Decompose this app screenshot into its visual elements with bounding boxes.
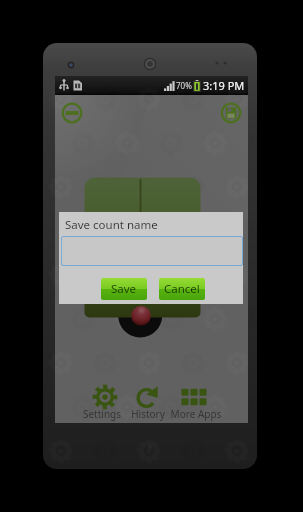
staticText: Save [111,281,137,297]
staticText: Settings [75,407,129,421]
button[interactable]: Save [101,278,147,300]
staticText: More Apps [169,407,223,421]
staticText: Cancel [164,281,200,297]
button[interactable]: Cancel [159,278,205,300]
staticText: Save count name [65,217,158,233]
button[interactable]: More Apps [169,381,223,423]
button[interactable]: History [121,381,175,423]
button[interactable]: Settings [75,381,129,423]
staticText: 3:19 PM [203,78,245,93]
staticText: 70% [176,80,192,91]
button[interactable]: Save count [218,100,244,126]
staticText: History [121,407,175,421]
button[interactable]: Decrease count [59,100,85,126]
